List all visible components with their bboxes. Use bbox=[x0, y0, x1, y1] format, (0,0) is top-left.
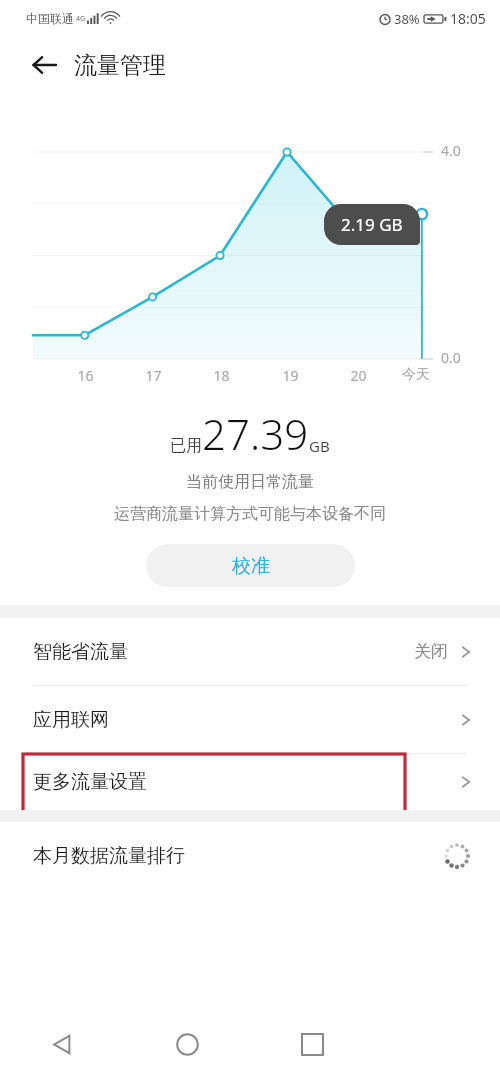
staticText: 今天 bbox=[402, 366, 430, 384]
staticText: 20 bbox=[350, 366, 367, 385]
staticText: 校准 bbox=[232, 554, 270, 578]
button[interactable]: 智能省流量 bbox=[0, 618, 500, 685]
staticText: 本月数据流量排行 bbox=[33, 844, 185, 868]
button[interactable]: Back bbox=[24, 45, 64, 85]
staticText: 中国联通 bbox=[26, 11, 74, 26]
staticText: 19 bbox=[282, 366, 299, 385]
staticText: 27.39 bbox=[202, 405, 309, 462]
staticText: 18 bbox=[213, 366, 230, 385]
staticText: 当前使用日常流量 bbox=[186, 472, 314, 492]
staticText: 17 bbox=[145, 366, 162, 385]
staticText: 更多流量设置 bbox=[33, 770, 147, 794]
staticText: GB bbox=[309, 436, 330, 456]
button[interactable]: 应用联网 bbox=[0, 686, 500, 753]
staticText: 2.19 GB bbox=[341, 213, 403, 236]
button[interactable]: 校准 bbox=[146, 544, 355, 587]
staticText: 38% bbox=[394, 10, 420, 28]
button[interactable]: Back bbox=[0, 1005, 125, 1083]
staticText: 关闭 bbox=[414, 641, 448, 662]
button[interactable]: Home bbox=[125, 1005, 250, 1083]
staticText: 18:05 bbox=[450, 9, 486, 28]
staticText: 运营商流量计算方式可能与本设备不同 bbox=[114, 504, 386, 524]
button[interactable]: Recents bbox=[250, 1005, 375, 1083]
staticText: 4.0 bbox=[441, 141, 461, 160]
staticText: 应用联网 bbox=[33, 708, 109, 732]
staticText: 16 bbox=[77, 366, 94, 385]
button[interactable]: 本月数据流量排行 bbox=[0, 822, 500, 890]
other: Loading bbox=[444, 843, 470, 869]
staticText: 已用 bbox=[170, 436, 202, 456]
staticText: 智能省流量 bbox=[33, 640, 128, 664]
staticText: 0.0 bbox=[441, 348, 461, 367]
staticText: 流量管理 bbox=[74, 51, 166, 80]
button[interactable]: 更多流量设置 bbox=[0, 754, 500, 810]
staticText: 4G bbox=[76, 14, 86, 24]
